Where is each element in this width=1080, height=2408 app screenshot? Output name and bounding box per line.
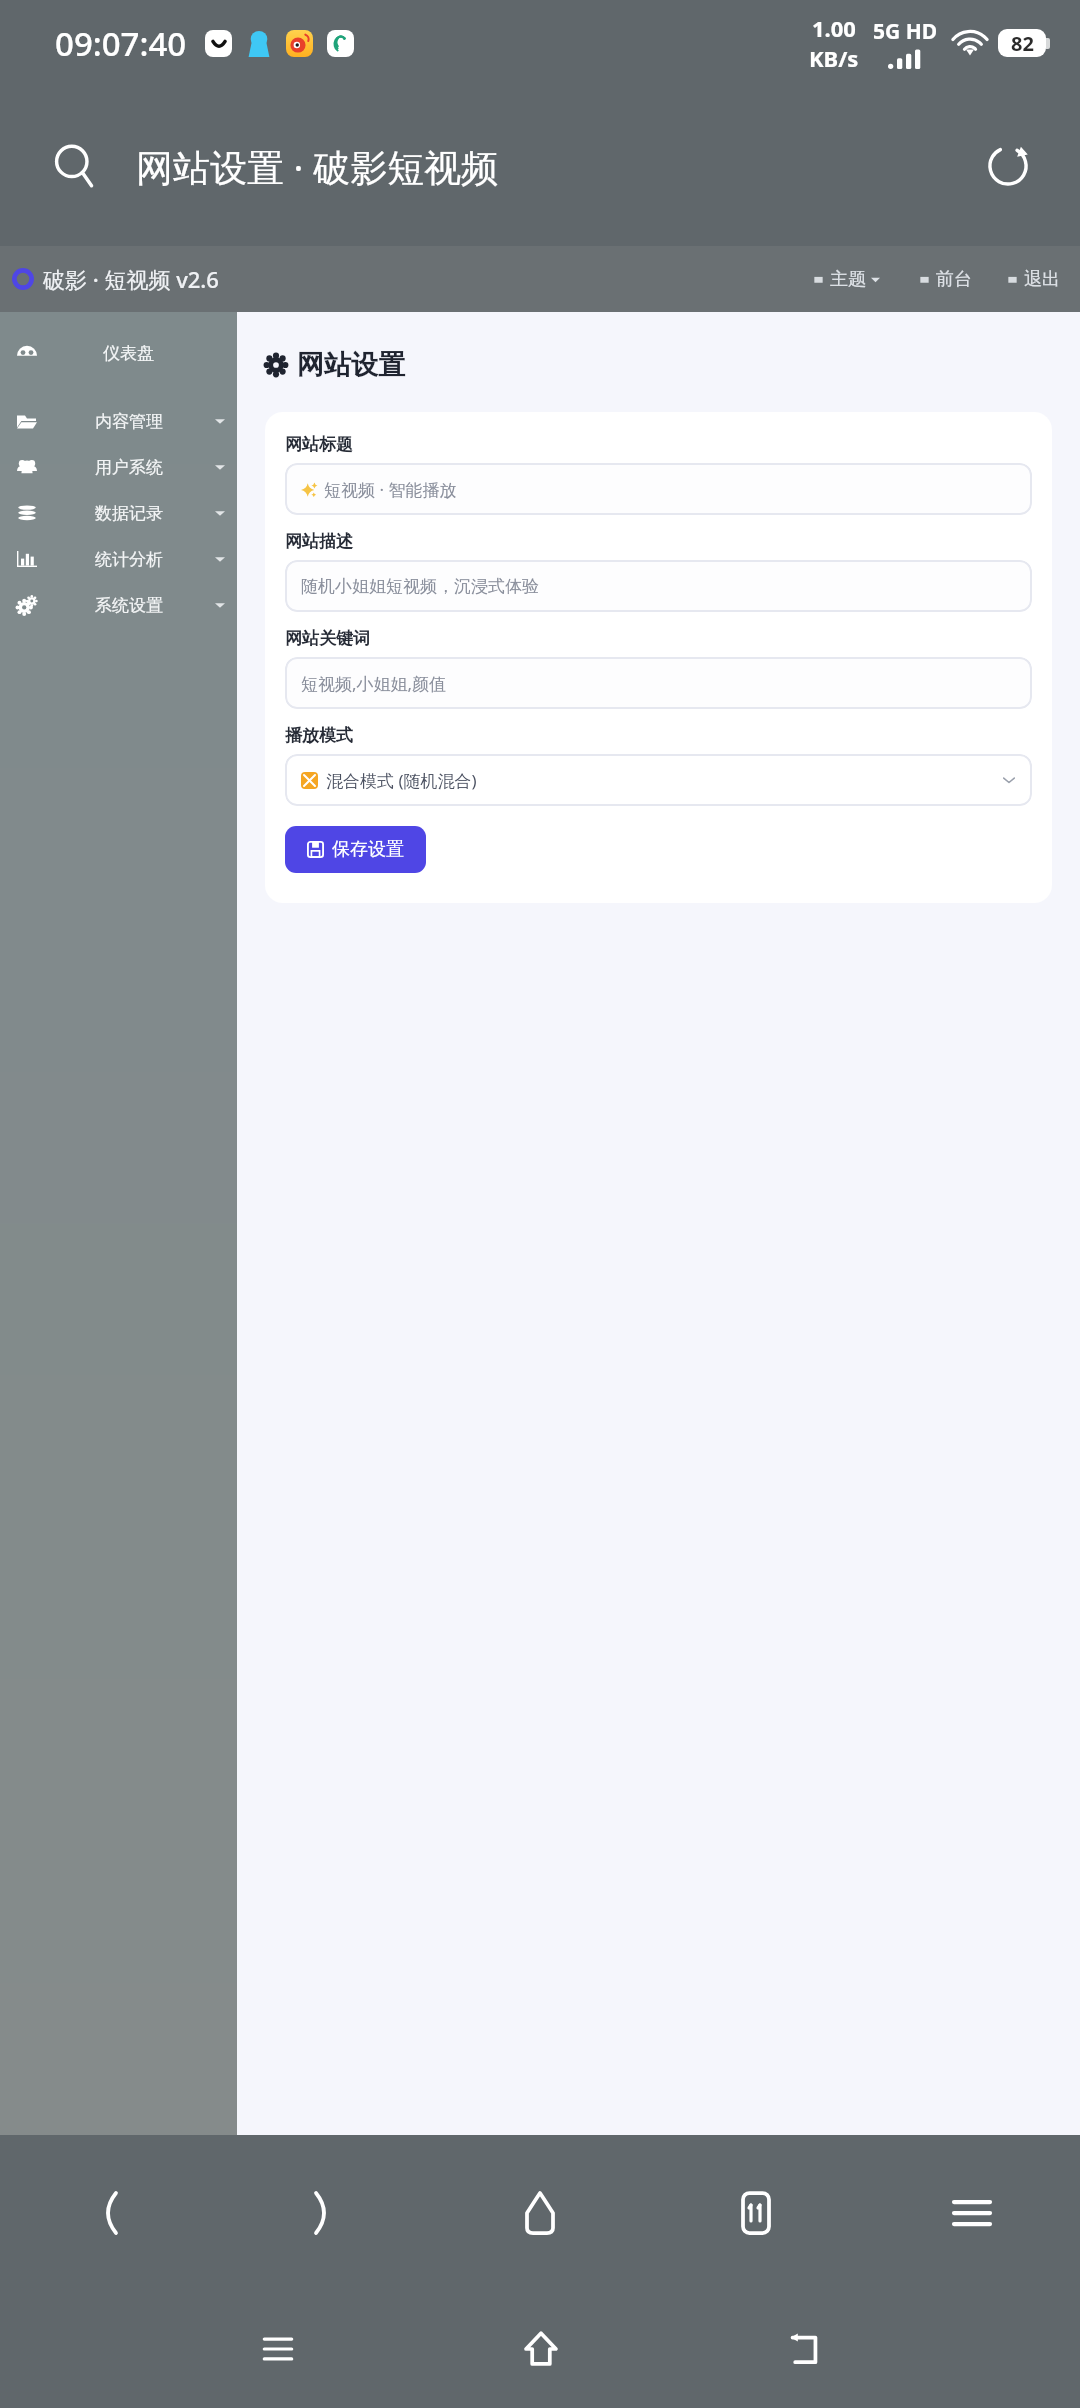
staticText: 仪表盘 <box>103 343 154 364</box>
button[interactable]: Search <box>36 127 114 205</box>
button[interactable]: Recents <box>146 2290 409 2408</box>
staticText: 数据记录 <box>95 503 163 524</box>
staticText: 短视频 · 智能播放 <box>324 478 457 501</box>
staticText: 网站设置 <box>297 348 405 382</box>
button[interactable]: Back <box>0 2135 216 2290</box>
button[interactable]: 短视频,小姐姐,颜值 <box>285 657 1032 709</box>
button[interactable]: 前台 <box>916 264 974 295</box>
staticText: 混合模式 (随机混合) <box>326 769 477 792</box>
staticText: 退出 <box>1024 268 1060 291</box>
staticText: 82 <box>1011 30 1034 57</box>
staticText: 1.00 <box>812 13 856 43</box>
staticText: 网站描述 <box>285 531 353 552</box>
button[interactable]: 系统设置 <box>0 582 237 628</box>
button[interactable]: Tabs: 11 <box>648 2135 864 2290</box>
staticText: 破影 · 短视频 v2.6 <box>43 264 219 294</box>
button[interactable]: 混合模式 (随机混合) <box>285 754 1032 806</box>
button[interactable]: 随机小姐姐短视频，沉浸式体验 <box>285 560 1032 612</box>
staticText: 09:07:40 <box>55 21 187 66</box>
staticText: 网站设置 · 破影短视频 <box>136 141 499 192</box>
button[interactable]: Menu <box>864 2135 1080 2290</box>
staticText: 网站标题 <box>285 434 353 455</box>
button[interactable]: 短视频 · 智能播放 <box>285 463 1032 515</box>
button[interactable]: 内容管理 <box>0 398 237 444</box>
button[interactable]: Home <box>409 2290 672 2408</box>
staticText: 播放模式 <box>285 725 353 746</box>
button[interactable]: Back <box>672 2290 935 2408</box>
button[interactable]: Refresh <box>970 128 1046 204</box>
button[interactable]: 主题 <box>810 264 882 295</box>
staticText: 网站关键词 <box>285 628 370 649</box>
button[interactable]: 仪表盘 <box>0 330 237 376</box>
button[interactable]: 统计分析 <box>0 536 237 582</box>
staticText: KB/s <box>809 43 859 73</box>
button[interactable]: 退出 <box>1004 264 1062 295</box>
staticText: 保存设置 <box>332 838 404 861</box>
button[interactable]: Forward <box>216 2135 432 2290</box>
button[interactable]: Home <box>432 2135 648 2290</box>
staticText: 主题 <box>830 268 866 291</box>
staticText: 前台 <box>936 268 972 291</box>
staticText: 随机小姐姐短视频，沉浸式体验 <box>301 576 539 597</box>
staticText: 5G HD <box>873 17 938 46</box>
button[interactable]: 用户系统 <box>0 444 237 490</box>
staticText: 系统设置 <box>95 595 163 616</box>
staticText: 统计分析 <box>95 549 163 570</box>
staticText: 短视频,小姐姐,颜值 <box>301 672 447 695</box>
button[interactable]: 数据记录 <box>0 490 237 536</box>
button[interactable]: 保存设置 <box>285 826 426 873</box>
staticText: 内容管理 <box>95 411 163 432</box>
staticText: 用户系统 <box>95 457 163 478</box>
